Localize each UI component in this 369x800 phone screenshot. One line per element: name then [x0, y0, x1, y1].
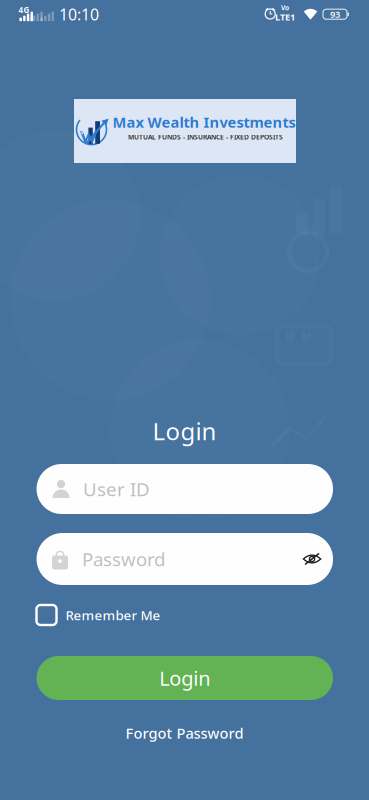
staticText: Vo: [281, 3, 289, 12]
staticText: 4G: [18, 5, 29, 15]
button[interactable]: Show password: [297, 544, 327, 574]
staticText: LTE1: [275, 11, 295, 23]
staticText: 93: [330, 8, 340, 20]
staticText: Max Wealth Investments: [112, 112, 295, 132]
button[interactable]: Remember Me: [36, 602, 206, 628]
staticText: User ID: [83, 477, 150, 501]
staticText: Remember Me: [65, 606, 160, 624]
button[interactable]: Login: [37, 656, 333, 700]
staticText: Login: [152, 415, 216, 447]
staticText: Password: [82, 547, 165, 571]
staticText: Forgot Password: [125, 723, 243, 743]
staticText: Login: [159, 665, 210, 691]
button[interactable]: Forgot Password: [114, 721, 254, 745]
staticText: 10:10: [59, 4, 99, 25]
staticText: MUTUAL FUNDS - INSURANCE - FIXED DEPOSIT…: [128, 133, 283, 141]
